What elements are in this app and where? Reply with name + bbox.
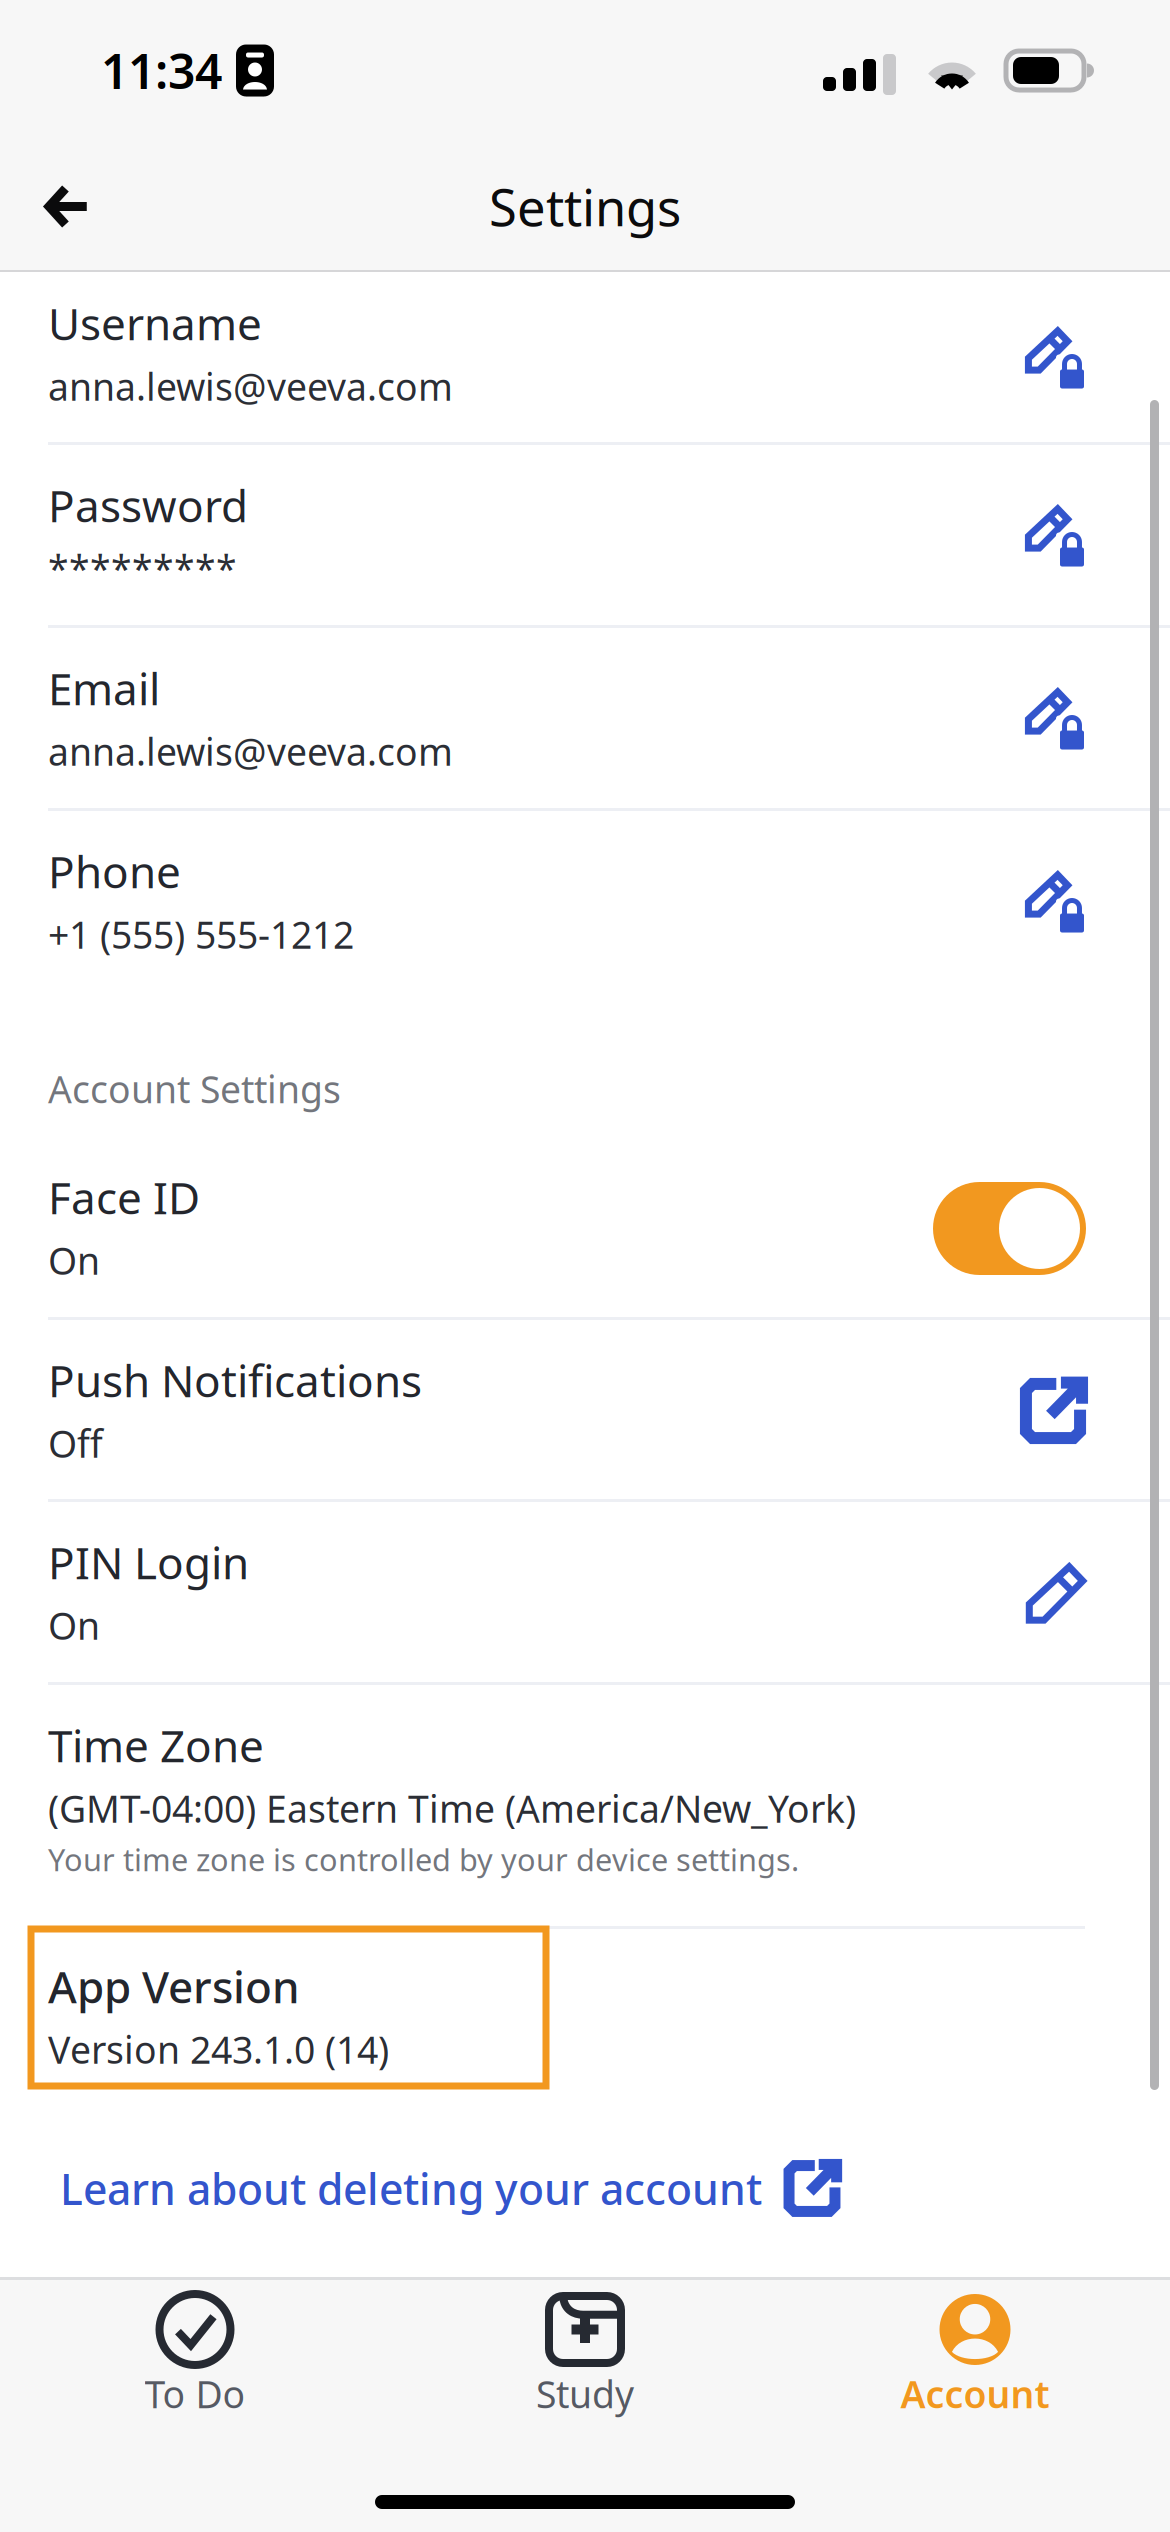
staticText: Off xyxy=(48,1418,103,1468)
staticText: Email xyxy=(48,659,160,717)
button[interactable]: Push Notifications xyxy=(0,1320,1170,1502)
staticText: Face ID xyxy=(48,1168,200,1226)
button[interactable]: Email xyxy=(0,628,1170,811)
staticText: On xyxy=(48,1600,100,1650)
staticText: 11:34 xyxy=(101,39,222,102)
staticText: Version 243.1.0 (14) xyxy=(48,2024,389,2074)
button[interactable]: Phone xyxy=(0,811,1170,994)
staticText: Your time zone is controlled by your dev… xyxy=(48,1839,799,1880)
staticText: Username xyxy=(48,294,262,352)
staticText: anna.lewis@veeva.com xyxy=(48,361,453,411)
staticText: PIN Login xyxy=(48,1533,249,1591)
staticText: Account Settings xyxy=(48,1064,341,1114)
button[interactable]: Password xyxy=(0,445,1170,628)
button[interactable]: Username xyxy=(0,272,1170,445)
staticText: Study xyxy=(536,2369,634,2419)
button[interactable]: Account xyxy=(780,2294,1170,2444)
button[interactable]: Learn about deleting your account xyxy=(0,2151,1170,2226)
staticText: Phone xyxy=(48,842,181,900)
button[interactable]: Study xyxy=(390,2294,780,2444)
staticText: Learn about deleting your account xyxy=(60,2160,762,2217)
staticText: +1 (555) 555-1212 xyxy=(48,909,354,959)
staticText: App Version xyxy=(48,1957,300,2015)
staticText: Password xyxy=(48,476,248,534)
button[interactable]: PIN Login xyxy=(0,1502,1170,1685)
button[interactable]: To Do xyxy=(0,2294,390,2444)
staticText: Settings xyxy=(489,173,681,240)
staticText: (GMT-04:00) Eastern Time (America/New_Yo… xyxy=(48,1783,856,1833)
staticText: Account xyxy=(900,2369,1049,2419)
staticText: Push Notifications xyxy=(48,1351,422,1409)
staticText: ********* xyxy=(48,543,237,593)
staticText: On xyxy=(48,1235,100,1285)
staticText: To Do xyxy=(144,2369,245,2419)
staticText: Time Zone xyxy=(48,1716,264,1774)
button[interactable]: Back xyxy=(0,141,135,272)
button[interactable]: Face ID xyxy=(0,1137,1170,1320)
staticText: anna.lewis@veeva.com xyxy=(48,726,453,776)
